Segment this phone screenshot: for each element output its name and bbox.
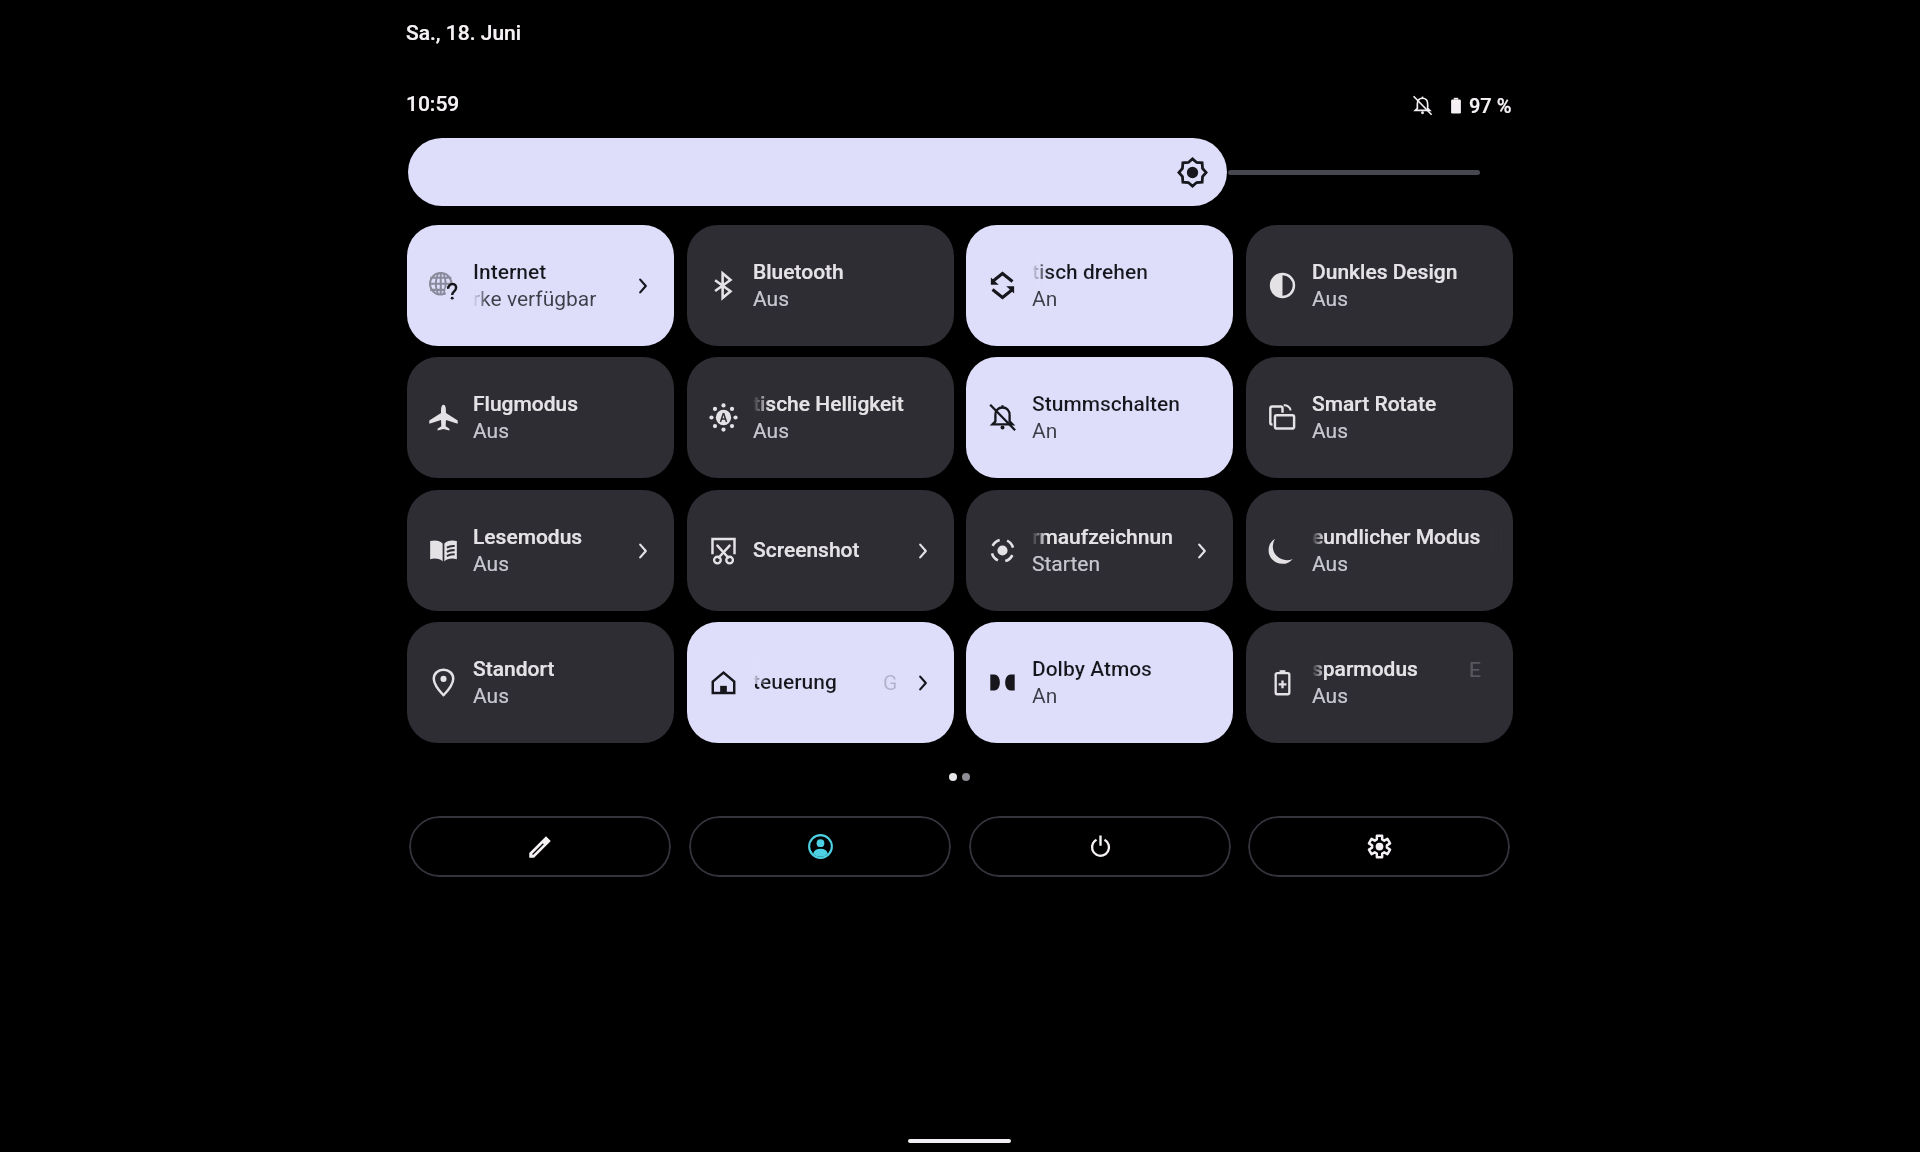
staticText: 10:59 (406, 92, 460, 117)
button[interactable]: Standort (407, 622, 674, 743)
button[interactable]: Dunkles Design (1246, 225, 1513, 346)
button[interactable]: rmaufzeichnun (966, 490, 1233, 611)
button[interactable]: Screenshot (687, 490, 954, 611)
staticText: Dolby Atmos (1032, 657, 1152, 682)
staticText: Aus (473, 684, 510, 709)
staticText: G (883, 671, 898, 696)
button[interactable]: Flugmodus (407, 357, 674, 478)
staticText: Aus (753, 287, 790, 312)
staticText: Dunkles Design (1312, 260, 1458, 285)
staticText: rke verfügbar (473, 287, 597, 312)
staticText: Starten (1032, 552, 1100, 577)
staticText: rmaufzeichnun (1032, 525, 1173, 550)
staticText: Stummschalten (1032, 392, 1181, 417)
button[interactable]: Edit tiles (409, 816, 671, 877)
staticText: Lesemodus (473, 525, 583, 550)
button[interactable]: eundlicher Modus (1246, 490, 1513, 611)
staticText: sparmodus (1312, 657, 1418, 682)
button[interactable]: Settings (1248, 816, 1510, 877)
button[interactable]: Smart Rotate (1246, 357, 1513, 478)
button[interactable]: Power (969, 816, 1231, 877)
staticText: Aus (753, 419, 790, 444)
staticText: Smart Rotate (1312, 392, 1437, 417)
staticText: Aus (1312, 552, 1349, 577)
button[interactable]: Stummschalten (966, 357, 1233, 478)
staticText: Screenshot (753, 538, 860, 563)
button[interactable]: Lesemodus (407, 490, 674, 611)
button[interactable]: Dolby Atmos (966, 622, 1233, 743)
button[interactable]: tische Helligkeit (687, 357, 954, 478)
staticText: Aus (1312, 287, 1349, 312)
staticText: An (1032, 287, 1058, 312)
staticText: Standort (473, 657, 555, 682)
staticText: Aus (473, 419, 510, 444)
staticText: tische Helligkeit (753, 392, 904, 417)
button[interactable]: Brightness (408, 138, 1227, 206)
staticText: teuerung (753, 670, 837, 695)
staticText: An (1032, 684, 1058, 709)
staticText: Aus (1312, 684, 1349, 709)
button[interactable]: teuerung (687, 622, 954, 743)
staticText: tisch drehen (1032, 260, 1148, 285)
button[interactable]: Page 1 of 2 (949, 773, 970, 781)
staticText: Sa., 18. Juni (406, 21, 522, 46)
staticText: An (1032, 419, 1058, 444)
staticText: 97 % (1469, 94, 1512, 117)
button[interactable]: Bluetooth (687, 225, 954, 346)
staticText: eundlicher Modus (1312, 525, 1481, 550)
button[interactable]: Internet (407, 225, 674, 346)
staticText: Bluetooth (753, 260, 844, 285)
staticText: Internet (473, 260, 547, 285)
button[interactable]: tisch drehen (966, 225, 1233, 346)
staticText: Flugmodus (473, 392, 579, 417)
staticText: E (1469, 658, 1481, 683)
staticText: Aus (1312, 419, 1349, 444)
button[interactable]: sparmodus (1246, 622, 1513, 743)
button[interactable]: User (689, 816, 951, 877)
staticText: Aus (473, 552, 510, 577)
